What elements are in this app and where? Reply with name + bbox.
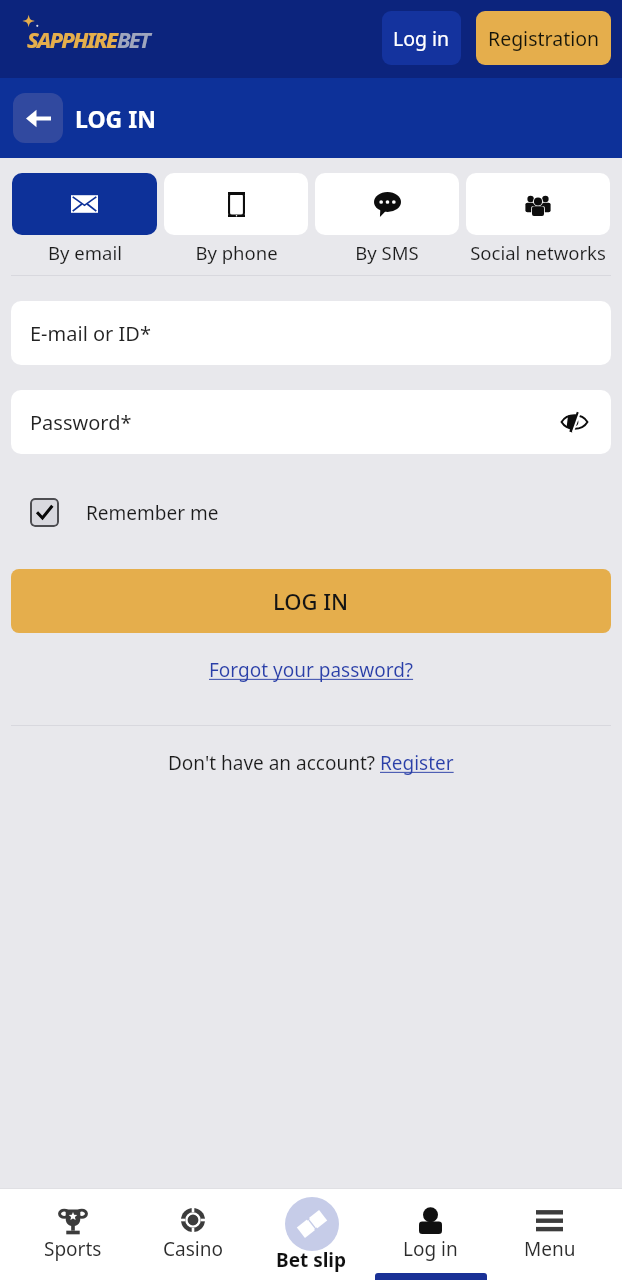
button[interactable]: By phone: [164, 173, 308, 265]
staticText: LOG IN: [273, 586, 349, 616]
button[interactable]: Remember me: [11, 498, 611, 527]
button[interactable]: Bet slip: [252, 1189, 371, 1280]
button[interactable]: E-mail or ID*: [11, 301, 611, 365]
staticText: BET: [117, 24, 149, 54]
button[interactable]: Show password: [559, 407, 589, 437]
staticText: LOG IN: [75, 103, 156, 134]
staticText: Social networks: [470, 240, 606, 265]
staticText: Casino: [163, 1236, 223, 1262]
staticText: By SMS: [355, 240, 419, 265]
staticText: E-mail or ID*: [30, 320, 151, 347]
staticText: Register: [380, 750, 454, 776]
staticText: By email: [48, 240, 122, 265]
button[interactable]: LOG IN: [11, 569, 611, 633]
staticText: Remember me: [86, 500, 219, 526]
button[interactable]: Back: [13, 93, 63, 143]
button[interactable]: Casino: [133, 1189, 252, 1280]
staticText: Log in: [393, 25, 450, 52]
staticText: Registration: [488, 25, 600, 52]
button[interactable]: By SMS: [315, 173, 459, 265]
staticText: Menu: [524, 1236, 576, 1262]
staticText: By phone: [195, 240, 278, 265]
button[interactable]: Menu: [490, 1189, 609, 1280]
button[interactable]: Registration: [476, 11, 611, 65]
button[interactable]: Social networks: [466, 173, 610, 265]
button[interactable]: Forgot your password?: [209, 657, 414, 683]
staticText: Log in: [403, 1236, 458, 1262]
button[interactable]: Log in: [371, 1189, 490, 1280]
staticText: Password*: [30, 409, 132, 436]
staticText: Forgot your password?: [209, 657, 414, 683]
staticText: SAPPHIRE: [27, 24, 117, 54]
staticText: Sports: [44, 1236, 102, 1262]
button[interactable]: Password*: [11, 390, 611, 454]
staticText: Don't have an account?: [168, 750, 380, 776]
button[interactable]: Log in: [382, 11, 461, 65]
button[interactable]: By email: [12, 173, 157, 265]
staticText: Bet slip: [276, 1247, 347, 1273]
button[interactable]: Sports: [13, 1189, 133, 1280]
button[interactable]: Register: [380, 750, 454, 776]
